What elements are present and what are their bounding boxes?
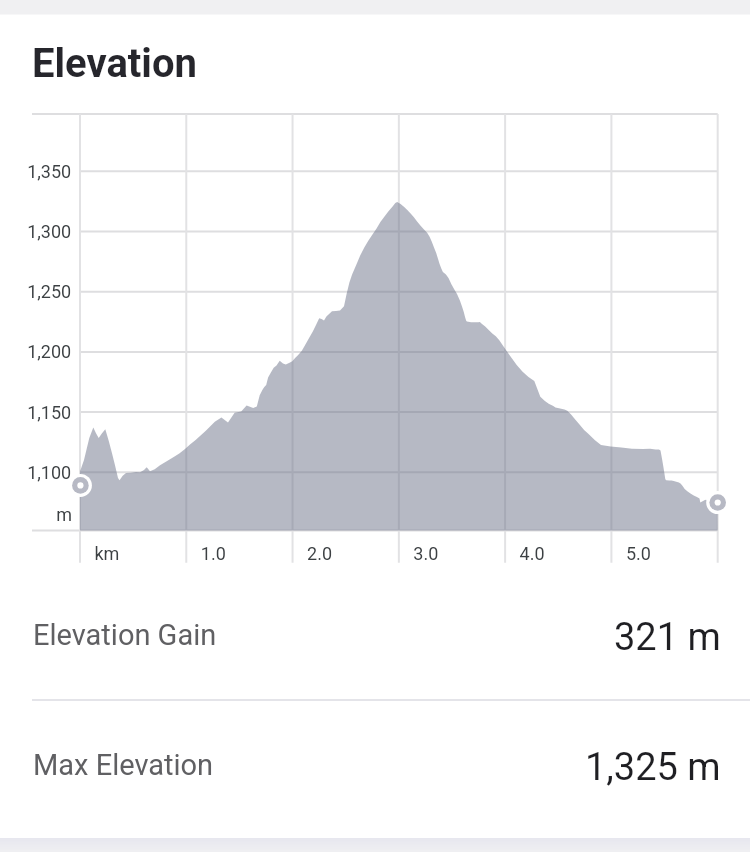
button[interactable]: Elevation Gain [0, 571, 750, 699]
button[interactable]: Elevation profile chart [16, 108, 734, 570]
staticText: Elevation [32, 40, 197, 87]
staticText: 321 m [614, 615, 721, 660]
staticText: Max Elevation [33, 748, 214, 782]
staticText: 1,325 m [585, 745, 721, 790]
staticText: Elevation Gain [33, 618, 217, 652]
button[interactable]: Max Elevation [0, 701, 750, 829]
